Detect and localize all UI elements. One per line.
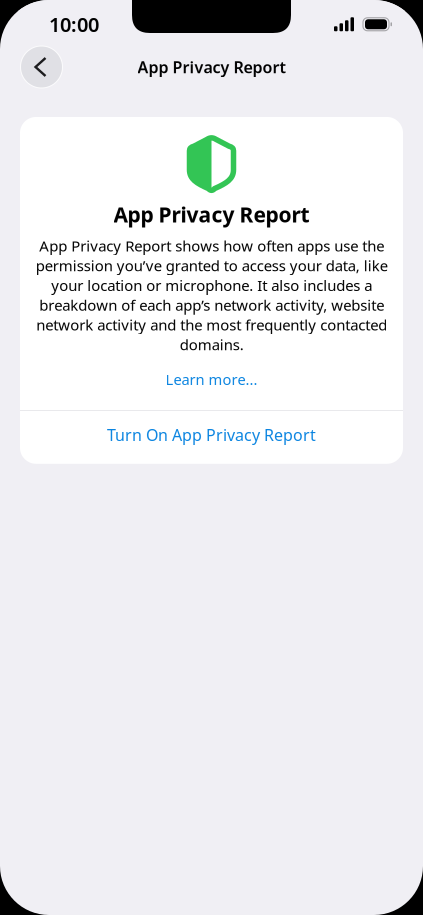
staticText: App Privacy Report <box>137 56 285 78</box>
button[interactable]: Learn more... <box>20 354 403 410</box>
staticText: App Privacy Report <box>113 200 309 228</box>
staticText: Learn more... <box>165 369 257 389</box>
button[interactable]: Back <box>20 45 63 88</box>
staticText: Turn On App Privacy Report <box>107 424 316 446</box>
staticText: App Privacy Report shows how often apps … <box>35 235 387 354</box>
staticText: 10:00 <box>49 11 99 38</box>
button[interactable]: Turn On App Privacy Report <box>20 411 403 464</box>
